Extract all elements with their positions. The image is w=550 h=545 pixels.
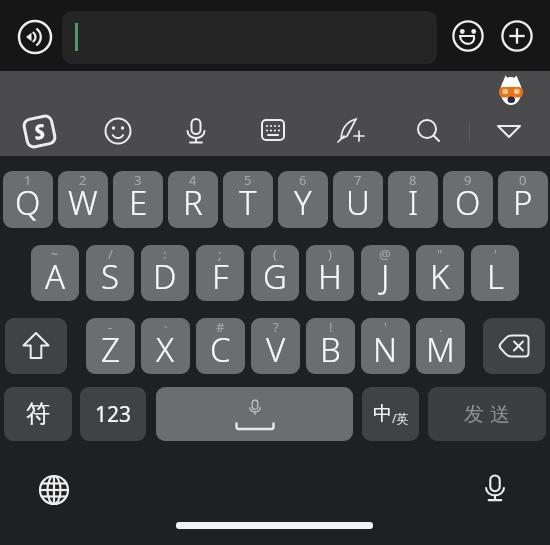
staticText: # — [216, 318, 225, 336]
staticText: 中 — [373, 402, 392, 426]
staticText: ( — [273, 245, 277, 263]
button[interactable] — [407, 109, 451, 153]
button[interactable]: 123 — [80, 387, 146, 441]
button[interactable]: @ — [361, 245, 409, 301]
button[interactable]: ( — [251, 245, 299, 301]
button[interactable] — [36, 472, 72, 508]
button[interactable]: 8 — [388, 171, 438, 228]
staticText: X — [156, 327, 175, 372]
button[interactable]: S — [17, 109, 61, 153]
button[interactable] — [5, 318, 67, 374]
staticText: S — [31, 117, 48, 146]
button[interactable]: 5 — [223, 171, 273, 228]
button[interactable] — [477, 471, 513, 507]
staticText: ; — [218, 245, 222, 263]
button[interactable] — [96, 109, 140, 153]
staticText: P — [513, 180, 533, 225]
staticText: G — [263, 254, 287, 299]
staticText: Y — [294, 180, 312, 225]
button[interactable] — [17, 19, 53, 55]
staticText: 0 — [519, 171, 527, 189]
button[interactable]: ' — [471, 245, 519, 301]
staticText: 123 — [95, 400, 132, 429]
staticText: : — [163, 245, 167, 263]
staticText: F — [212, 254, 229, 299]
button[interactable]: ? — [251, 318, 300, 374]
staticText: 5 — [244, 171, 252, 189]
button[interactable]: · — [141, 318, 190, 374]
button[interactable]: 4 — [168, 171, 218, 228]
staticText: J — [381, 254, 390, 299]
staticText: 4 — [189, 171, 197, 189]
staticText: 3 — [134, 171, 142, 189]
staticText: S — [101, 254, 120, 299]
staticText: W — [68, 180, 98, 225]
staticText: R — [183, 180, 203, 225]
button[interactable] — [501, 20, 533, 52]
staticText: ~ — [51, 245, 59, 263]
staticText: - — [108, 318, 113, 336]
staticText: U — [346, 180, 370, 225]
staticText: D — [153, 254, 177, 299]
staticText: 9 — [464, 171, 472, 189]
button[interactable]: ' — [361, 318, 410, 374]
button[interactable]: 0 — [498, 171, 548, 228]
staticText: 6 — [299, 171, 307, 189]
button[interactable] — [452, 20, 484, 52]
button[interactable] — [251, 109, 295, 153]
button[interactable]: ! — [306, 318, 355, 374]
button[interactable]: 2 — [58, 171, 108, 228]
staticText: B — [320, 327, 341, 372]
button[interactable]: . — [416, 318, 465, 374]
staticText: 1 — [24, 171, 32, 189]
staticText: E — [129, 180, 148, 225]
button[interactable] — [329, 109, 373, 153]
staticText: 发送 — [461, 402, 513, 427]
staticText: A — [45, 254, 66, 299]
staticText: Q — [15, 180, 41, 225]
button[interactable]: 3 — [113, 171, 163, 228]
staticText: 符 — [26, 399, 50, 429]
staticText: O — [455, 180, 481, 225]
button[interactable]: 1 — [3, 171, 53, 228]
button[interactable]: 符 — [4, 387, 72, 441]
staticText: ! — [329, 318, 333, 336]
button[interactable]: 6 — [278, 171, 328, 228]
staticText: " — [437, 245, 443, 263]
button[interactable]: 中 — [362, 387, 419, 441]
staticText: Z — [101, 327, 120, 372]
button[interactable] — [487, 109, 531, 153]
staticText: ' — [384, 318, 387, 336]
staticText: 2 — [79, 171, 87, 189]
staticText: ? — [273, 318, 279, 336]
staticText: 8 — [409, 171, 417, 189]
button[interactable]: 发送 — [428, 387, 546, 441]
button[interactable]: ; — [196, 245, 244, 301]
staticText: L — [487, 254, 504, 299]
staticText: C — [210, 327, 231, 372]
staticText: M — [426, 327, 455, 372]
button[interactable]: - — [86, 318, 135, 374]
staticText: ) — [328, 245, 332, 263]
staticText: /英 — [392, 410, 409, 426]
staticText: V — [266, 327, 286, 372]
staticText: T — [239, 180, 257, 225]
staticText: / — [108, 245, 113, 263]
staticText: . — [439, 318, 443, 336]
button[interactable]: 9 — [443, 171, 493, 228]
button[interactable]: ~ — [31, 245, 79, 301]
button[interactable]: 7 — [333, 171, 383, 228]
staticText: ' — [494, 245, 497, 263]
button[interactable] — [174, 109, 218, 153]
button[interactable] — [62, 11, 437, 64]
staticText: N — [373, 327, 398, 372]
staticText: 7 — [354, 171, 362, 189]
button[interactable]: # — [196, 318, 245, 374]
button[interactable] — [483, 318, 545, 374]
button[interactable] — [156, 387, 353, 441]
button[interactable]: ) — [306, 245, 354, 301]
staticText: I — [408, 180, 419, 225]
button[interactable]: : — [141, 245, 189, 301]
button[interactable]: / — [86, 245, 134, 301]
button[interactable]: " — [416, 245, 464, 301]
